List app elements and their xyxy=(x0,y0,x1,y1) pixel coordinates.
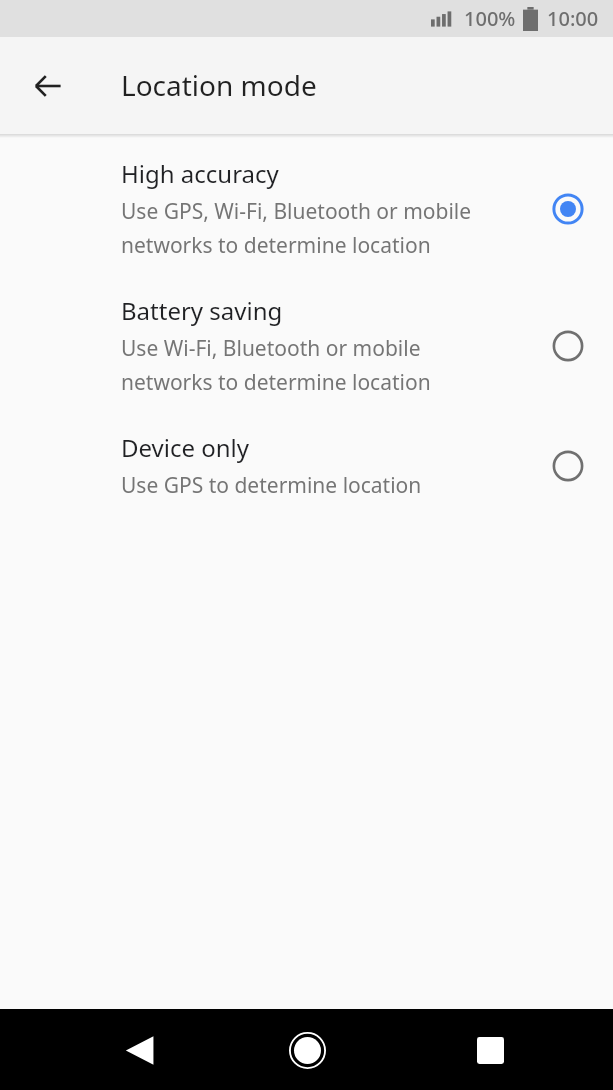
staticText: High accuracy xyxy=(121,157,279,190)
button[interactable]: Battery saving xyxy=(0,288,613,403)
staticText: 100% xyxy=(464,5,516,32)
button[interactable]: Device only xyxy=(0,425,613,506)
staticText: Use GPS, Wi-Fi, Bluetooth or mobile xyxy=(121,197,472,226)
button[interactable]: Back xyxy=(106,1017,172,1083)
button[interactable]: Home xyxy=(274,1017,340,1083)
staticText: networks to determine location xyxy=(121,231,431,260)
staticText: Battery saving xyxy=(121,294,283,327)
staticText: Use Wi-Fi, Bluetooth or mobile xyxy=(121,334,421,363)
staticText: 10:00 xyxy=(547,5,599,32)
staticText: Location mode xyxy=(121,66,317,104)
button[interactable]: Recent apps xyxy=(457,1017,523,1083)
staticText: networks to determine location xyxy=(121,368,431,397)
staticText: Device only xyxy=(121,431,250,464)
staticText: Use GPS to determine location xyxy=(121,471,422,500)
button[interactable]: High accuracy xyxy=(0,151,613,266)
button[interactable]: Back xyxy=(22,60,74,112)
